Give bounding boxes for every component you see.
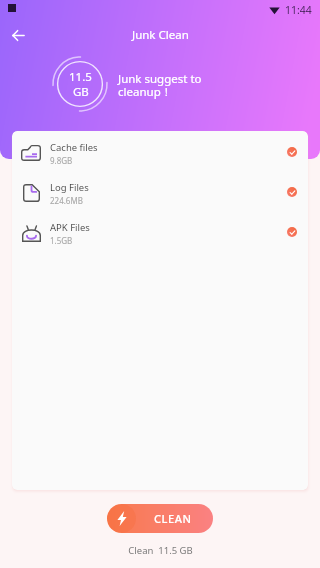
- button[interactable]: Log Files: [12, 173, 308, 213]
- staticText: Clean 11.5 GB: [128, 544, 193, 557]
- staticText: Junk Clean: [132, 27, 189, 43]
- staticText: CLEAN: [154, 511, 192, 526]
- staticText: 9.8GB: [50, 155, 73, 166]
- staticText: APK Files: [50, 221, 90, 234]
- staticText: 1.5GB: [50, 235, 73, 246]
- button[interactable]: Selected: [287, 147, 297, 157]
- staticText: 224.6MB: [50, 195, 83, 206]
- staticText: Log Files: [50, 181, 89, 194]
- button[interactable]: Cache files: [12, 133, 308, 173]
- staticText: Cache files: [50, 141, 98, 154]
- button[interactable]: Back: [5, 22, 31, 48]
- staticText: GB: [73, 84, 89, 100]
- button[interactable]: CLEAN: [107, 504, 213, 533]
- button[interactable]: APK Files: [12, 213, 308, 253]
- staticText: 11:44: [285, 3, 312, 17]
- staticText: 11.5: [69, 69, 92, 85]
- staticText: Junk suggest to cleanup！: [118, 71, 202, 99]
- button[interactable]: Selected: [287, 227, 297, 237]
- button[interactable]: Selected: [287, 187, 297, 197]
